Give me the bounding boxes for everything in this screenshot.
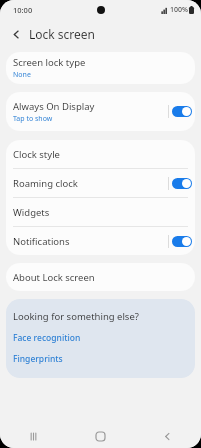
staticText: Roaming clock — [13, 177, 78, 190]
staticText: Always On Display — [13, 100, 95, 113]
staticText: Tap to show — [13, 114, 53, 124]
staticText: Face recognition — [13, 332, 81, 344]
staticText: Notifications — [13, 235, 70, 248]
staticText: Screen lock type — [13, 56, 86, 69]
button[interactable]: Roaming clock toggle — [169, 169, 195, 197]
button[interactable]: Widgets — [6, 198, 195, 226]
button[interactable]: Screen lock type — [6, 52, 195, 84]
staticText: None — [13, 70, 31, 80]
button[interactable]: About Lock screen — [6, 263, 195, 291]
button[interactable]: Fingerprints — [13, 353, 63, 365]
button[interactable]: Recent apps — [0, 424, 67, 448]
button[interactable]: Back — [7, 25, 25, 43]
button[interactable]: Back — [134, 424, 201, 448]
staticText: Looking for something else? — [13, 310, 139, 323]
staticText: Fingerprints — [13, 353, 63, 365]
button[interactable]: Home — [67, 424, 134, 448]
button[interactable]: Notifications — [6, 227, 168, 255]
button[interactable]: Notifications toggle — [169, 227, 195, 255]
button[interactable]: Roaming clock — [6, 169, 168, 197]
staticText: About Lock screen — [13, 271, 95, 284]
button[interactable]: Always On Display — [6, 92, 168, 131]
staticText: 10:00 — [13, 5, 33, 15]
staticText: Widgets — [13, 206, 50, 219]
button[interactable]: Clock style — [6, 140, 195, 168]
staticText: Clock style — [13, 148, 60, 161]
staticText: Lock screen — [29, 26, 96, 42]
button[interactable]: Always On Display toggle — [169, 92, 195, 131]
staticText: 100% — [170, 5, 188, 15]
button[interactable]: Face recognition — [13, 332, 81, 344]
